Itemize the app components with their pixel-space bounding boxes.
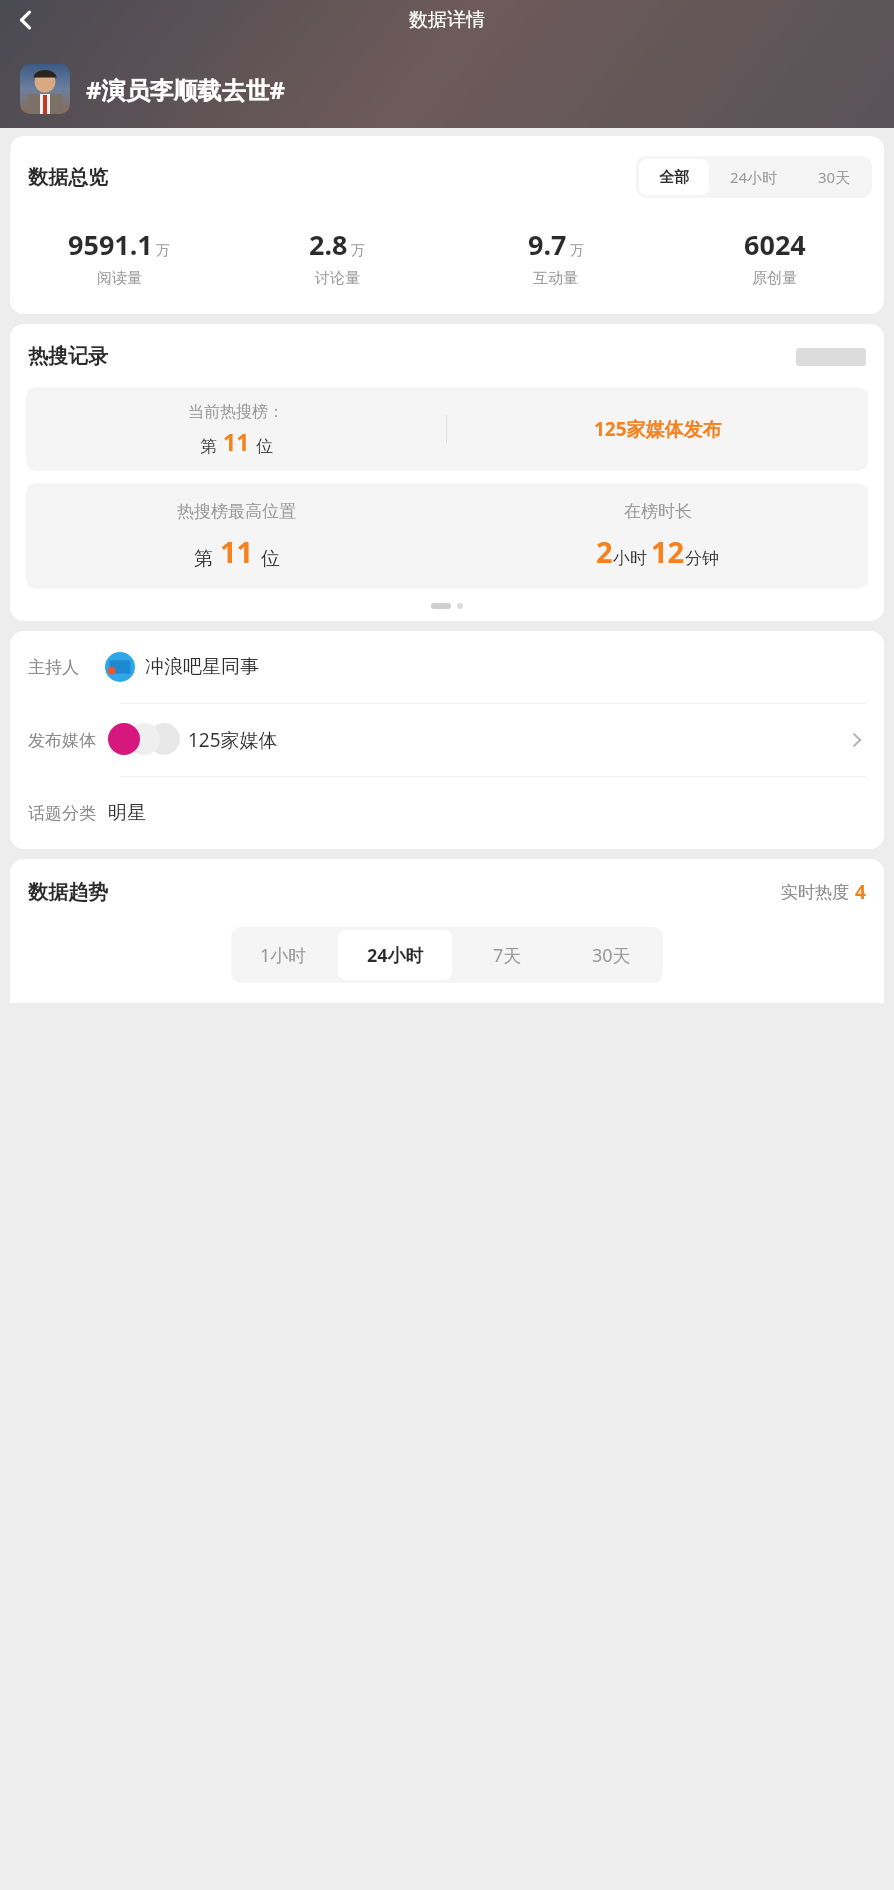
button[interactable]: 主持人 <box>10 631 884 703</box>
staticText: 11 <box>223 426 250 457</box>
staticText: 讨论量 <box>315 269 360 288</box>
button[interactable]: 24小时 <box>715 159 793 195</box>
staticText: 2 <box>596 532 613 571</box>
staticText: 阅读量 <box>97 269 142 288</box>
staticText: 9591.1 <box>68 226 153 263</box>
button[interactable]: 1小时 <box>234 930 332 980</box>
staticText: 在榜时长 <box>624 501 692 522</box>
staticText: 万 <box>570 242 584 260</box>
staticText: 热搜榜最高位置 <box>177 501 296 522</box>
staticText: 主持人 <box>28 657 79 678</box>
staticText: 数据总览 <box>28 165 108 190</box>
button[interactable]: 7天 <box>458 930 556 980</box>
staticText: 实时热度 <box>781 882 849 903</box>
staticText: 125家媒体 <box>188 727 278 753</box>
staticText: 万 <box>156 242 170 260</box>
staticText: 30天 <box>818 167 851 187</box>
staticText: 1小时 <box>260 943 307 968</box>
button[interactable]: 当前热搜榜： <box>26 387 868 471</box>
staticText: 数据详情 <box>409 8 485 32</box>
button[interactable]: 30天 <box>562 930 660 980</box>
staticText: 话题分类 <box>28 803 96 824</box>
button[interactable]: 发布媒体 <box>10 704 884 776</box>
staticText: 第 <box>194 547 213 571</box>
staticText: 互动量 <box>533 269 578 288</box>
staticText: 分钟 <box>685 548 719 569</box>
staticText: #演员李顺载去世# <box>86 73 286 106</box>
staticText: 原创量 <box>752 269 797 288</box>
button[interactable]: 24小时 <box>338 930 452 980</box>
staticText: 4 <box>855 879 866 905</box>
staticText: 冲浪吧星同事 <box>145 655 259 679</box>
staticText: 7天 <box>493 943 522 968</box>
staticText: 30天 <box>592 943 631 968</box>
staticText: 2.8 <box>309 226 348 263</box>
staticText: 小时 <box>613 548 647 569</box>
staticText: 万 <box>351 242 365 260</box>
staticText: 位 <box>261 547 280 571</box>
staticText: 明星 <box>108 801 146 825</box>
button[interactable]: Back <box>6 0 46 40</box>
staticText: 热搜记录 <box>28 344 108 369</box>
button[interactable]: 话题分类 <box>10 777 884 849</box>
staticText: 9.7 <box>528 226 567 263</box>
staticText: 11 <box>220 532 254 571</box>
button[interactable]: 全部 <box>639 159 709 195</box>
staticText: 位 <box>256 436 273 457</box>
button[interactable]: 热搜榜最高位置 <box>26 483 868 589</box>
staticText: 当前热搜榜： <box>188 402 284 422</box>
staticText: 12 <box>651 532 685 571</box>
button[interactable]: 30天 <box>799 159 869 195</box>
button[interactable]: Topic avatar <box>20 64 70 114</box>
staticText: 全部 <box>659 168 689 187</box>
staticText: 数据趋势 <box>28 880 108 905</box>
staticText: 125家媒体发布 <box>594 416 722 442</box>
staticText: 24小时 <box>730 167 778 187</box>
staticText: 6024 <box>744 226 806 263</box>
staticText: 第 <box>200 436 217 457</box>
staticText: 发布媒体 <box>28 730 96 751</box>
staticText: 24小时 <box>367 943 424 968</box>
